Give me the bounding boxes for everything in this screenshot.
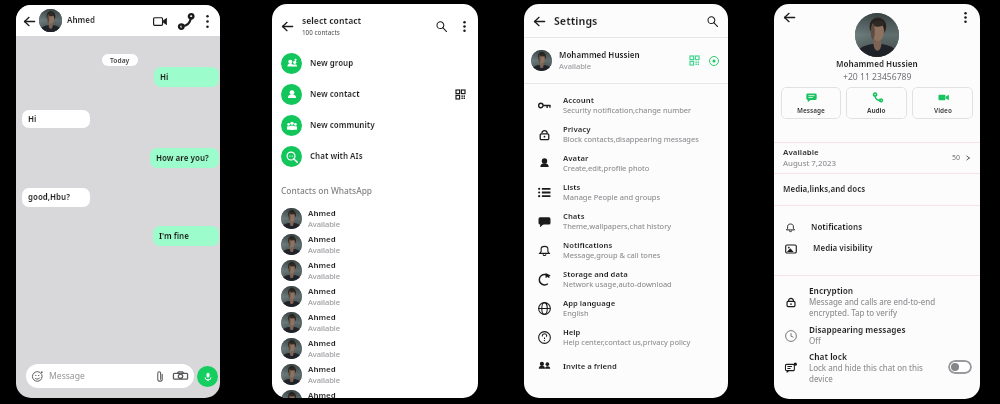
button[interactable]: How are you? — [150, 148, 219, 168]
staticText: Notifications — [811, 222, 863, 233]
staticText: Privacy — [563, 124, 591, 134]
staticText: Account — [563, 95, 595, 105]
button[interactable]: Ahmed — [272, 205, 478, 231]
staticText: Manage People and groups — [563, 192, 661, 202]
staticText: Encryption — [809, 285, 854, 296]
staticText: Ahmed — [308, 208, 336, 219]
button[interactable]: More options — [958, 10, 972, 24]
button[interactable]: Ahmed — [272, 231, 478, 257]
button[interactable]: Chats — [524, 206, 728, 235]
staticText: Invite a friend — [563, 361, 617, 371]
staticText: Ahmed — [67, 15, 95, 26]
staticText: Chats — [563, 211, 585, 221]
button[interactable]: Invite a friend — [524, 353, 728, 379]
staticText: How are you? — [156, 153, 209, 164]
staticText: Video — [934, 106, 952, 115]
staticText: Available — [308, 323, 341, 333]
staticText: Disappearing messages — [809, 324, 906, 335]
staticText: Available — [308, 349, 341, 359]
button[interactable]: Chat with AIs — [272, 141, 478, 172]
button[interactable]: Ahmed — [272, 257, 478, 283]
staticText: Lock and hide this chat on this — [809, 362, 923, 373]
button[interactable]: Message — [26, 364, 194, 388]
button[interactable]: More options — [457, 19, 471, 33]
button[interactable]: Media visibility — [774, 238, 980, 259]
staticText: Chat with AIs — [310, 151, 363, 162]
button[interactable]: Media,links,and docs — [774, 174, 980, 205]
button[interactable]: Lists — [524, 177, 728, 206]
button[interactable]: Help — [524, 322, 728, 351]
staticText: Ahmed — [308, 234, 336, 245]
staticText: Media,links,and docs — [783, 184, 866, 195]
button[interactable]: App language — [524, 293, 728, 322]
staticText: Available — [308, 219, 341, 229]
button[interactable]: Ahmed — [272, 309, 478, 335]
staticText: New contact — [310, 89, 360, 100]
staticText: English — [563, 308, 589, 318]
button[interactable]: Privacy — [524, 119, 728, 148]
staticText: Mohammed Hussien — [559, 50, 640, 61]
staticText: Ahmed — [308, 286, 336, 297]
staticText: Storage and data — [563, 269, 628, 279]
staticText: Ahmed — [308, 390, 336, 398]
button[interactable]: New group — [272, 48, 478, 79]
button[interactable]: Avatar — [524, 148, 728, 177]
button[interactable]: Chat lock toggle — [948, 360, 972, 374]
button[interactable]: Chat lock — [774, 350, 980, 384]
button[interactable]: Available — [774, 143, 980, 173]
staticText: Hi — [160, 72, 169, 83]
button[interactable]: Hi — [154, 67, 219, 87]
button[interactable]: Ahmed — [272, 283, 478, 309]
button[interactable]: Back — [780, 8, 798, 26]
button[interactable]: Audio — [846, 87, 907, 119]
staticText: Create,edit,profile photo — [563, 163, 650, 173]
staticText: Help — [563, 327, 581, 337]
staticText: Message,group & call tones — [563, 250, 661, 260]
button[interactable]: Encryption — [774, 282, 980, 320]
staticText: Theme,wallpapers,chat history — [563, 221, 672, 231]
button[interactable]: I'm fine — [153, 226, 219, 246]
staticText: I'm fine — [159, 231, 189, 242]
button[interactable]: Mohammed Hussien — [524, 38, 728, 83]
button[interactable]: Ahmed — [272, 361, 478, 387]
staticText: Media visibility — [813, 243, 873, 254]
button[interactable]: Notifications — [774, 217, 980, 238]
button[interactable]: Ahmed — [272, 387, 478, 398]
button[interactable]: New contact — [272, 79, 478, 110]
staticText: Help center,contact us,privacy policy — [563, 337, 691, 347]
button[interactable]: Search — [433, 18, 449, 34]
staticText: New community — [310, 120, 375, 131]
button[interactable]: New community — [272, 110, 478, 141]
button[interactable]: Storage and data — [524, 264, 728, 293]
button[interactable]: Voice call — [177, 12, 195, 30]
button[interactable]: Disappearing messages — [774, 320, 980, 350]
staticText: August 7,2023 — [783, 158, 837, 169]
staticText: 50 — [952, 153, 961, 163]
staticText: Settings — [554, 14, 598, 28]
staticText: App language — [563, 298, 616, 308]
staticText: Block contacts,disappearing messages — [563, 134, 699, 144]
button[interactable]: Back — [278, 17, 296, 35]
button[interactable]: Hi — [22, 110, 90, 128]
staticText: Available — [308, 375, 341, 385]
button[interactable]: Message — [781, 87, 841, 119]
button[interactable]: Notifications — [524, 235, 728, 264]
button[interactable]: good,Hbu? — [22, 188, 90, 207]
staticText: Avatar — [563, 153, 589, 163]
staticText: Available — [783, 147, 819, 158]
staticText: Lists — [563, 182, 581, 192]
button[interactable]: Back — [20, 12, 38, 30]
staticText: 100 contacts — [302, 28, 340, 37]
button[interactable]: Video call — [151, 12, 169, 30]
staticText: Ahmed — [308, 312, 336, 323]
button[interactable]: More options — [200, 14, 214, 28]
button[interactable]: Search — [704, 13, 720, 29]
staticText: Mohammed Hussien — [836, 58, 918, 69]
staticText: Ahmed — [308, 260, 336, 271]
button[interactable]: Video — [912, 87, 973, 119]
button[interactable]: Account — [524, 90, 728, 119]
button[interactable]: Record voice message — [197, 366, 218, 387]
button[interactable]: Ahmed — [272, 335, 478, 361]
staticText: device — [809, 373, 833, 384]
button[interactable]: Back — [530, 12, 548, 30]
